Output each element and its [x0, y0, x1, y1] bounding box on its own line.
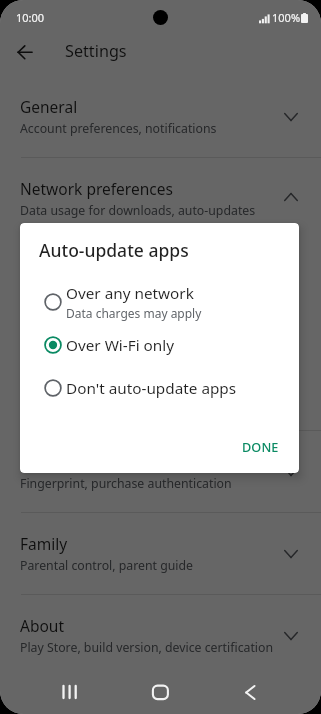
staticText: Account preferences, notifications [20, 120, 217, 137]
staticText: 10:00 [16, 10, 45, 25]
button[interactable]: Home [151, 684, 170, 701]
staticText: Play Store, build version, device certif… [20, 639, 274, 656]
staticText: Over Wi-Fi only [66, 335, 175, 356]
button[interactable]: Over any network [20, 280, 299, 324]
staticText: Network preferences [20, 178, 173, 199]
button[interactable]: Back [244, 684, 257, 701]
staticText: Don't auto-update apps [66, 378, 237, 399]
staticText: About [20, 615, 64, 636]
button[interactable]: General [0, 75, 321, 157]
staticText: Auto-update apps [39, 238, 189, 262]
button[interactable]: Auto-play videos [0, 367, 321, 430]
staticText: Fingerprint, purchase authentication [20, 475, 232, 492]
button[interactable]: About [0, 594, 321, 676]
staticText: Auto-update apps [36, 315, 167, 336]
staticText: Data usage for downloads, auto-updates [20, 202, 256, 219]
staticText: Auto-play videos [36, 378, 157, 399]
button[interactable]: Network preferences [0, 157, 321, 239]
button[interactable]: Recents [62, 684, 79, 700]
button[interactable]: App download preference [0, 239, 321, 303]
button[interactable]: Over Wi-Fi only [20, 324, 299, 366]
staticText: Family [20, 533, 68, 554]
staticText: Over any network [36, 275, 139, 292]
button[interactable]: Back [0, 30, 48, 75]
staticText: Settings [65, 40, 127, 62]
button[interactable]: Family [0, 512, 321, 594]
button[interactable]: Authentication [0, 430, 321, 512]
button[interactable]: DONE [231, 431, 289, 461]
staticText: App download preference [36, 251, 225, 272]
staticText: Data charges may apply [66, 305, 202, 321]
staticText: Over Wi-Fi only [36, 339, 123, 356]
staticText: Over any network [66, 283, 194, 304]
staticText: Parental control, parent guide [20, 557, 194, 574]
button[interactable]: Don't auto-update apps [20, 367, 299, 409]
staticText: General [20, 96, 78, 117]
staticText: Authentication [20, 451, 128, 472]
staticText: 100% [272, 10, 301, 25]
button[interactable]: Auto-update apps [0, 303, 321, 367]
staticText: DONE [242, 438, 279, 455]
